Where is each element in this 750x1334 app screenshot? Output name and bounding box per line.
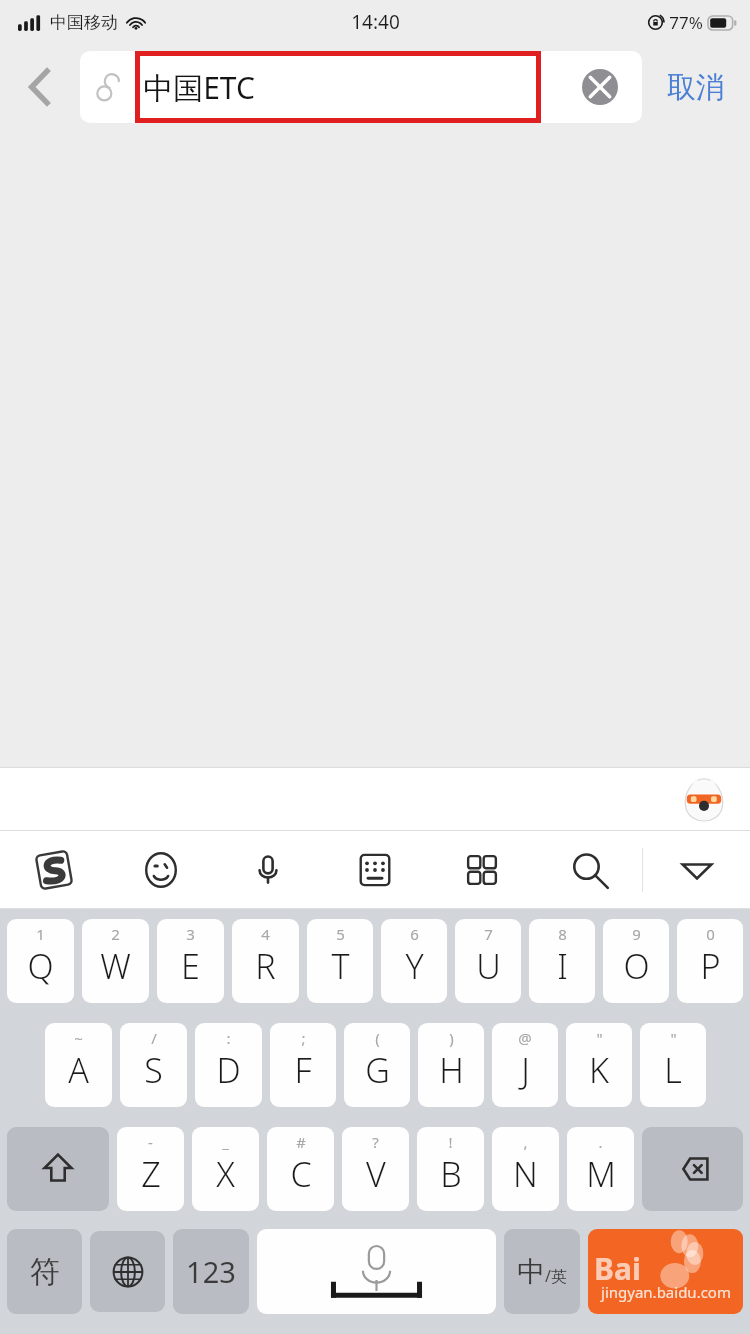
staticText: D [216, 1047, 241, 1093]
button[interactable]: 6 [381, 919, 447, 1003]
button[interactable]: : [195, 1023, 262, 1107]
staticText: 1 [36, 924, 45, 944]
button[interactable]: ! [417, 1127, 484, 1211]
staticText: C [290, 1151, 312, 1197]
staticText: V [366, 1151, 386, 1197]
button[interactable]: 2 [82, 919, 149, 1003]
button[interactable]: _ [192, 1127, 259, 1211]
staticText: M [586, 1151, 616, 1197]
button[interactable]: Shift [7, 1127, 109, 1211]
staticText: 2 [111, 924, 120, 944]
button[interactable]: Clear text [578, 65, 622, 109]
staticText: Y [405, 943, 424, 989]
button[interactable]: ( [344, 1023, 410, 1107]
button[interactable]: Search [588, 1229, 743, 1314]
staticText: 中国ETC [143, 67, 255, 108]
button[interactable]: " [566, 1023, 632, 1107]
staticText: ~ [74, 1028, 83, 1048]
staticText: R [255, 943, 276, 989]
button[interactable]: Keyboard layout [321, 831, 428, 909]
button[interactable]: 5 [307, 919, 373, 1003]
button[interactable]: ) [418, 1023, 484, 1107]
button[interactable]: Hide keyboard [643, 831, 750, 909]
staticText: " [596, 1028, 603, 1048]
staticText: U [476, 943, 501, 989]
button[interactable]: Sogou keyboard [0, 831, 107, 909]
button[interactable]: 7 [455, 919, 521, 1003]
button[interactable]: Voice input [214, 831, 321, 909]
button[interactable]: Sogou assistant [680, 775, 728, 823]
staticText: 5 [336, 924, 345, 944]
staticText: H [439, 1047, 464, 1093]
staticText: 中国移动 [50, 12, 118, 33]
staticText: 0 [706, 924, 715, 944]
staticText: E [181, 943, 200, 989]
button[interactable]: 中国ETC [80, 51, 642, 123]
staticText: S [144, 1047, 163, 1093]
staticText: 8 [558, 924, 567, 944]
staticText: 中 [517, 1254, 545, 1289]
staticText: 9 [632, 924, 641, 944]
button[interactable]: 符 [7, 1229, 82, 1314]
button[interactable]: More apps [428, 831, 535, 909]
button[interactable]: - [117, 1127, 184, 1211]
staticText: : [226, 1028, 231, 1048]
staticText: T [331, 943, 350, 989]
staticText: 6 [410, 924, 419, 944]
staticText: - [148, 1132, 153, 1152]
staticText: /英 [545, 1265, 567, 1287]
button[interactable]: 8 [529, 919, 595, 1003]
button[interactable]: Space [257, 1229, 496, 1314]
button[interactable]: . [567, 1127, 634, 1211]
staticText: J [521, 1047, 530, 1093]
staticText: Bai [594, 1248, 641, 1289]
button[interactable]: ? [342, 1127, 409, 1211]
staticText: ? [372, 1132, 379, 1152]
staticText: G [365, 1047, 390, 1093]
staticText: _ [222, 1132, 229, 1152]
staticText: 取消 [667, 69, 725, 106]
button[interactable]: , [492, 1127, 559, 1211]
staticText: 符 [30, 1253, 60, 1291]
button[interactable]: 123 [173, 1229, 249, 1314]
staticText: / [151, 1028, 157, 1048]
staticText: K [589, 1047, 609, 1093]
button[interactable]: 1 [7, 919, 74, 1003]
staticText: jingyan.baidu.com [601, 1282, 731, 1302]
button[interactable]: 9 [603, 919, 669, 1003]
button[interactable]: 0 [677, 919, 743, 1003]
staticText: 14:40 [351, 9, 400, 35]
staticText: 7 [484, 924, 493, 944]
staticText: ; [301, 1028, 306, 1048]
button[interactable]: " [640, 1023, 706, 1107]
button[interactable]: Emoji [107, 831, 214, 909]
staticText: ! [448, 1132, 453, 1152]
staticText: N [513, 1151, 538, 1197]
button[interactable]: / [120, 1023, 187, 1107]
staticText: ( [375, 1028, 380, 1048]
button[interactable]: 中 [504, 1229, 580, 1314]
button[interactable]: Backspace [642, 1127, 743, 1211]
staticText: B [440, 1151, 462, 1197]
staticText: I [557, 943, 568, 989]
button[interactable]: Search [535, 831, 642, 909]
staticText: W [100, 943, 131, 989]
button[interactable]: 4 [232, 919, 299, 1003]
button[interactable]: Back [0, 44, 80, 130]
staticText: L [664, 1047, 682, 1093]
staticText: # [296, 1132, 306, 1152]
staticText: Q [27, 943, 54, 989]
button[interactable]: 取消 [642, 44, 750, 130]
button[interactable]: ~ [45, 1023, 112, 1107]
button[interactable]: 3 [157, 919, 224, 1003]
button[interactable]: @ [492, 1023, 558, 1107]
staticText: F [294, 1047, 312, 1093]
button[interactable]: # [267, 1127, 334, 1211]
staticText: 77% [669, 11, 703, 34]
staticText: A [68, 1047, 89, 1093]
button[interactable]: Switch language [90, 1231, 165, 1312]
staticText: " [670, 1028, 677, 1048]
staticText: Z [141, 1151, 161, 1197]
button[interactable]: ; [270, 1023, 336, 1107]
staticText: O [623, 943, 650, 989]
